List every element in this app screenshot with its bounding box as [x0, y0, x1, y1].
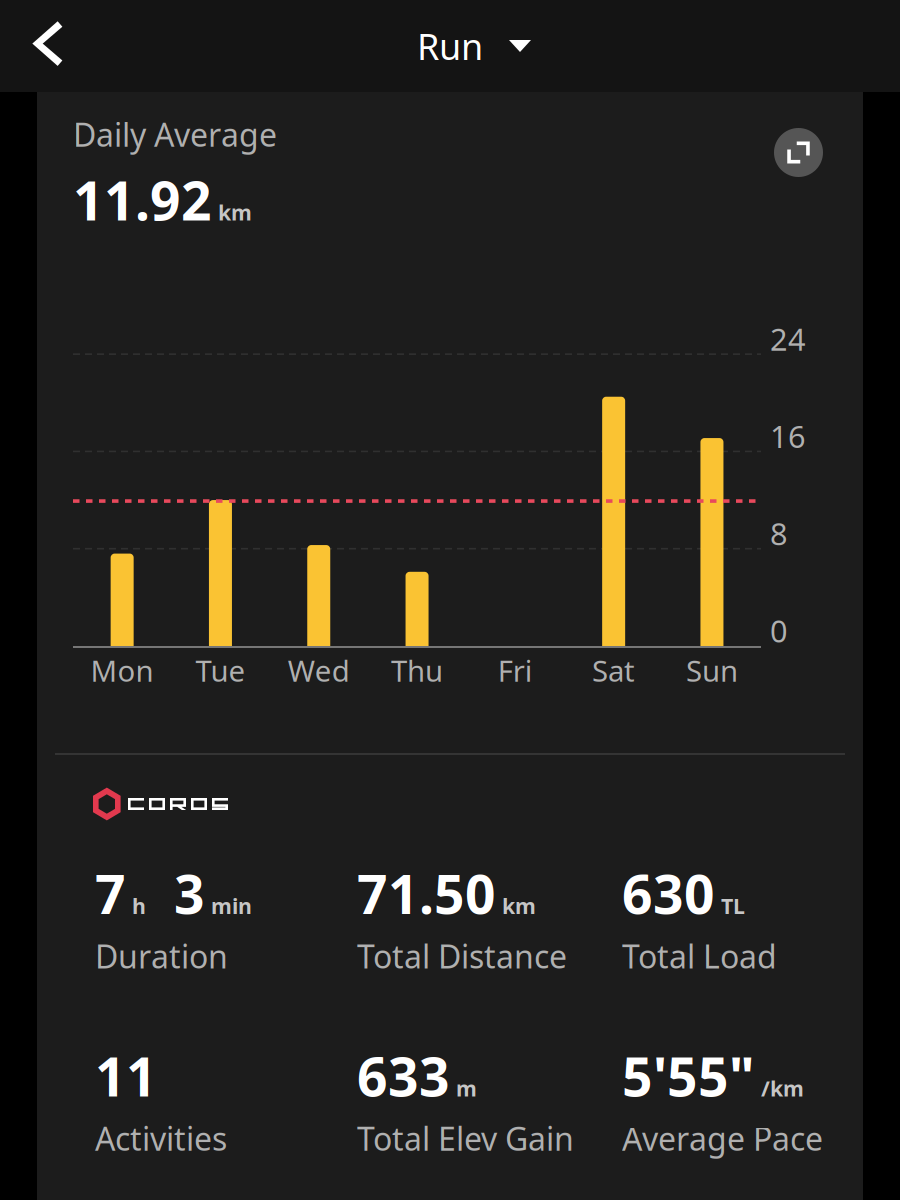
staticText: 8 [770, 513, 788, 554]
staticText: Tue [195, 651, 245, 690]
staticText: Duration [95, 935, 228, 977]
staticText: km [496, 892, 536, 920]
staticText: Average Pace [622, 1117, 823, 1160]
staticText: h [126, 892, 146, 920]
staticText: Total Load [622, 935, 777, 977]
staticText: Thu [391, 651, 443, 690]
staticText: 11.92 [73, 164, 212, 235]
staticText: Wed [288, 651, 350, 690]
staticText: Total Distance [357, 935, 567, 977]
staticText: TL [715, 892, 745, 920]
staticText: Activities [95, 1117, 227, 1160]
staticText: 633 [357, 1040, 450, 1111]
staticText: 0 [770, 610, 788, 651]
staticText: /km [755, 1074, 804, 1102]
staticText: Daily Average [73, 113, 277, 155]
staticText: 7 [95, 858, 126, 929]
staticText: min [205, 892, 252, 920]
staticText: Mon [91, 651, 154, 690]
staticText: km [212, 198, 252, 226]
staticText: 24 [770, 318, 806, 359]
staticText: Total Elev Gain [357, 1117, 574, 1160]
staticText: m [450, 1074, 477, 1102]
staticText: 3 [146, 858, 205, 929]
button[interactable]: Run [395, 0, 553, 94]
staticText: Fri [498, 651, 533, 690]
staticText: 5'55" [622, 1040, 755, 1111]
button[interactable]: Expand chart [774, 92, 863, 177]
staticText: 11 [95, 1040, 157, 1111]
button[interactable]: Back [0, 0, 900, 92]
staticText: Sat [592, 651, 635, 690]
staticText: Sun [686, 651, 738, 690]
staticText: 71.50 [357, 858, 496, 929]
staticText: 16 [770, 416, 806, 456]
staticText: 630 [622, 858, 715, 929]
staticText: Run [417, 22, 483, 70]
